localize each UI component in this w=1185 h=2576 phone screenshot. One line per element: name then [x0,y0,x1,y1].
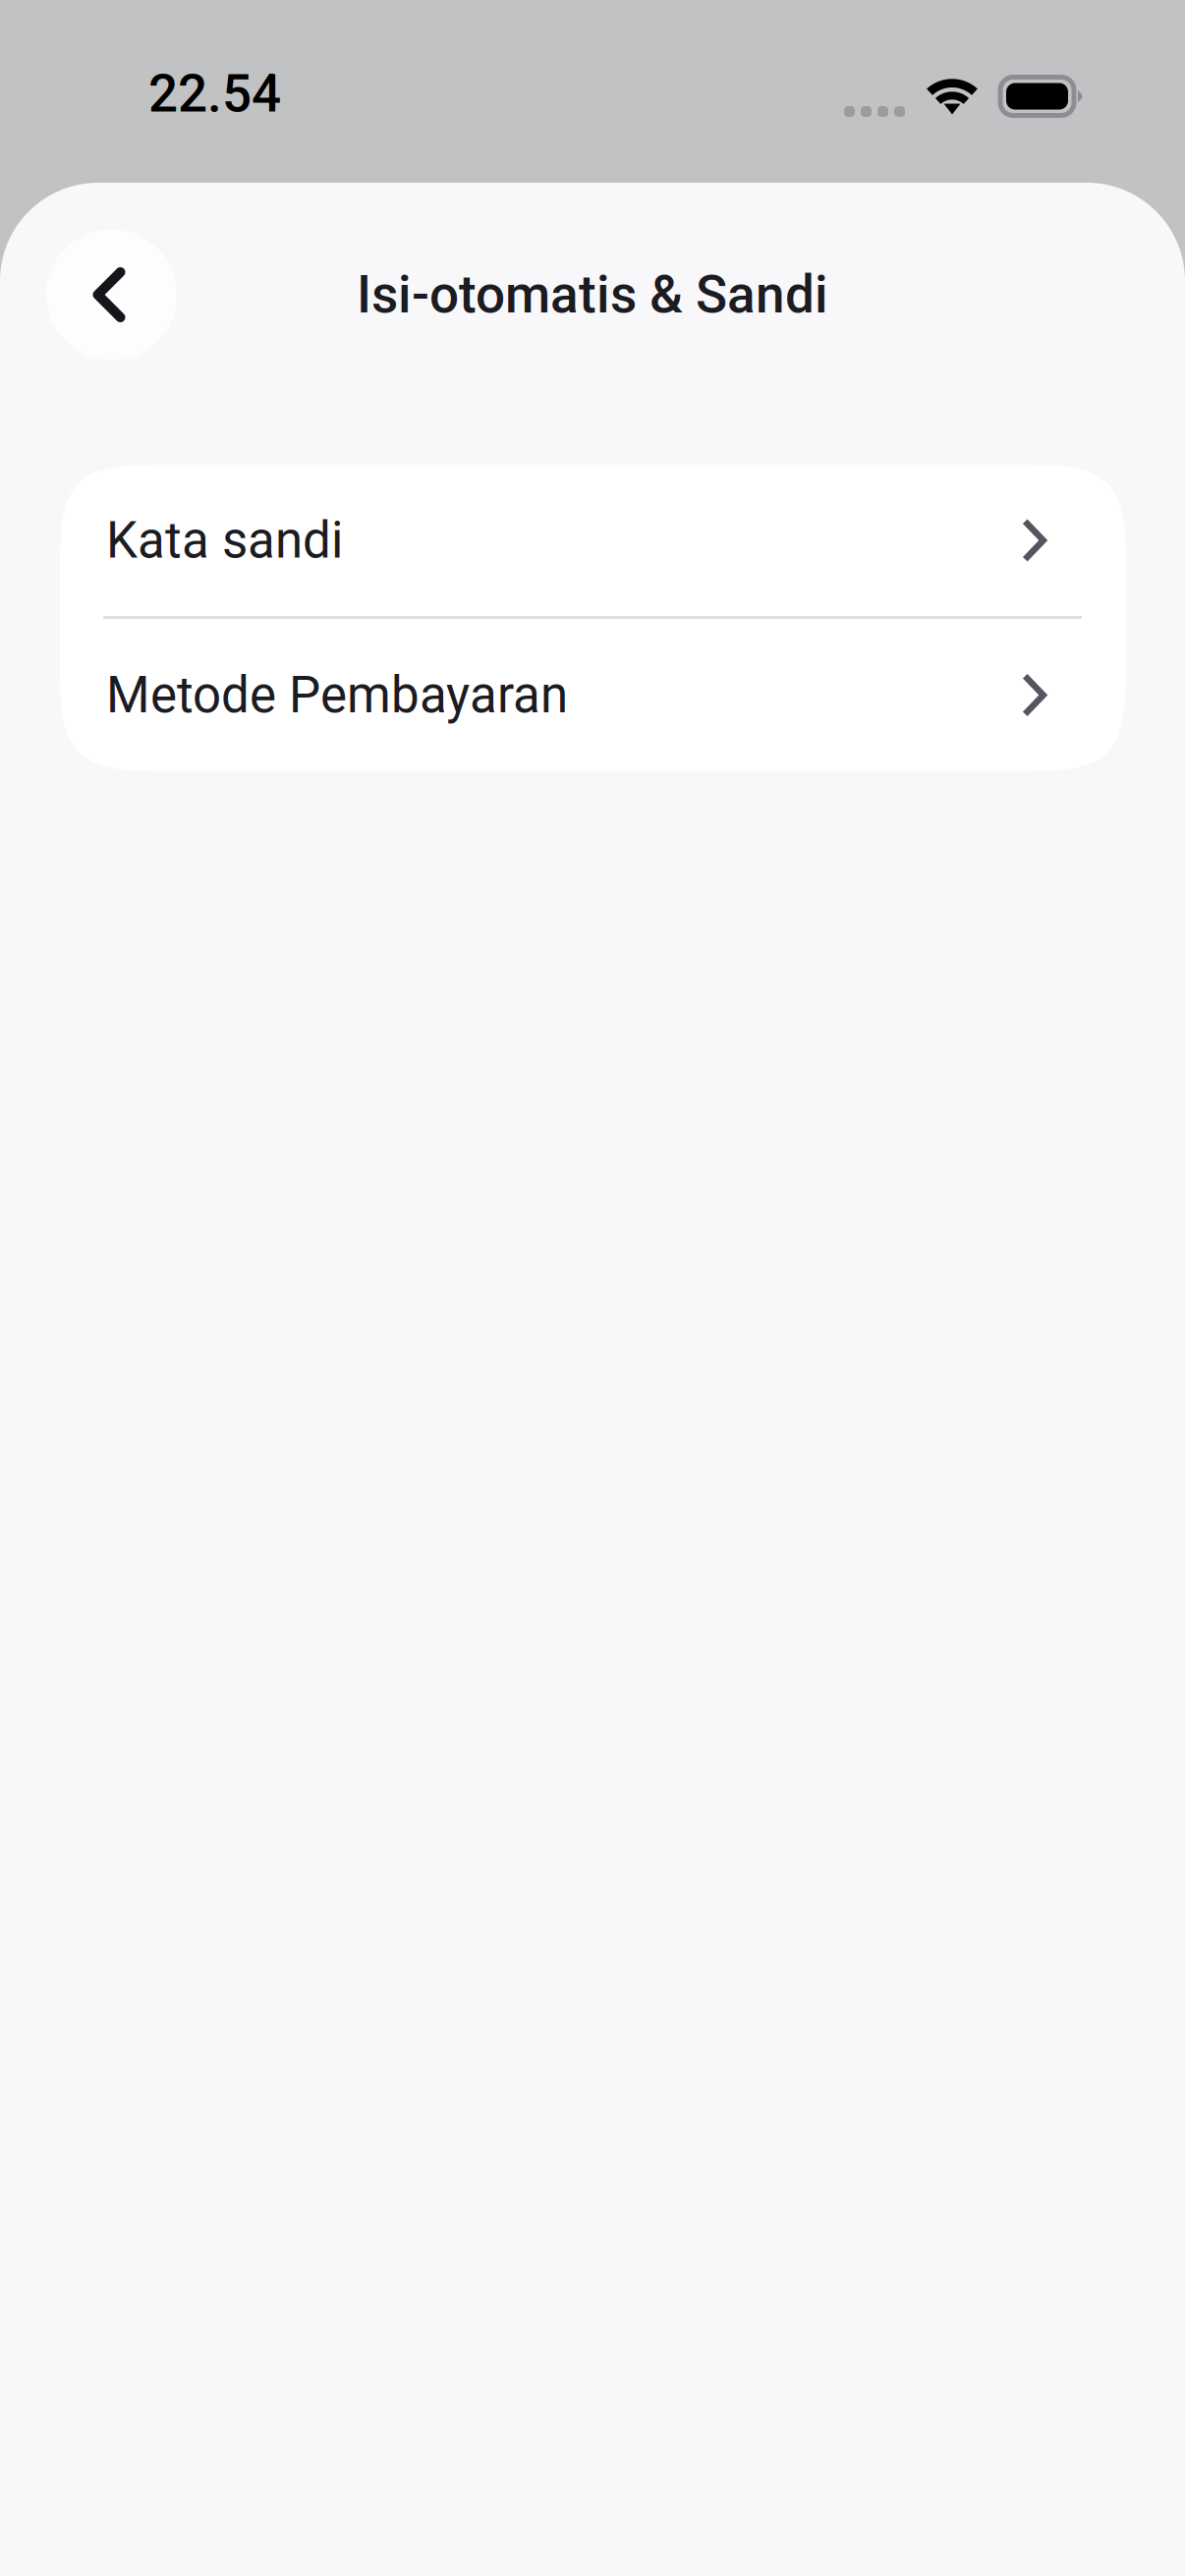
button[interactable]: Kata sandi [60,465,1126,616]
staticText: Metode Pembayaran [106,666,568,724]
staticText: Kata sandi [106,511,343,570]
staticText: 22.54 [148,63,281,124]
button[interactable]: Metode Pembayaran [60,619,1126,771]
button[interactable]: Back [46,229,177,360]
staticText: Isi-otomatis & Sandi [357,264,828,325]
